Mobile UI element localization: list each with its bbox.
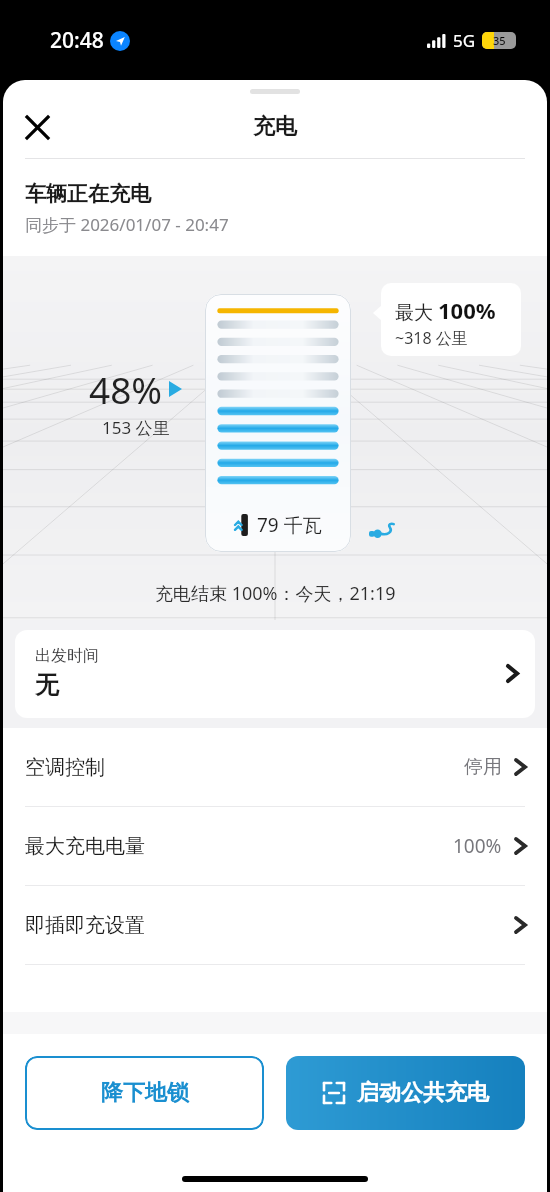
staticText: 5G (453, 29, 476, 52)
staticText: 35 (493, 33, 506, 48)
button[interactable]: 空调控制 (3, 728, 547, 806)
button[interactable]: 最大充电电量 (3, 807, 547, 885)
staticText: 车辆正在充电 (25, 181, 151, 207)
button[interactable]: 出发时间 (15, 630, 535, 718)
staticText: 100% (438, 295, 496, 325)
staticText: 48% (89, 364, 163, 414)
staticText: 充电 (253, 113, 297, 141)
staticText: 最大 (395, 299, 438, 325)
staticText: 最大充电电量 (25, 834, 145, 859)
button[interactable]: 降下地锁 (25, 1056, 264, 1130)
staticText: 153 公里 (102, 416, 170, 439)
button[interactable]: 即插即充设置 (3, 886, 547, 964)
staticText: 100% (453, 833, 502, 859)
staticText: 同步于 2026/01/07 - 20:47 (25, 213, 229, 236)
staticText: 空调控制 (25, 755, 105, 780)
staticText: 停用 (464, 755, 502, 779)
button[interactable]: Close (13, 103, 61, 151)
staticText: 20:48 (50, 26, 104, 55)
staticText: 即插即充设置 (25, 913, 145, 938)
staticText: 启动公共充电 (357, 1079, 489, 1107)
staticText: ~318 公里 (395, 327, 468, 349)
staticText: 79 千瓦 (257, 512, 322, 538)
button[interactable]: 启动公共充电 (286, 1056, 525, 1130)
staticText: 无 (35, 670, 59, 700)
staticText: 充电结束 100%：今天，21:19 (155, 581, 396, 606)
staticText: 降下地锁 (101, 1079, 189, 1107)
staticText: 出发时间 (35, 646, 99, 666)
